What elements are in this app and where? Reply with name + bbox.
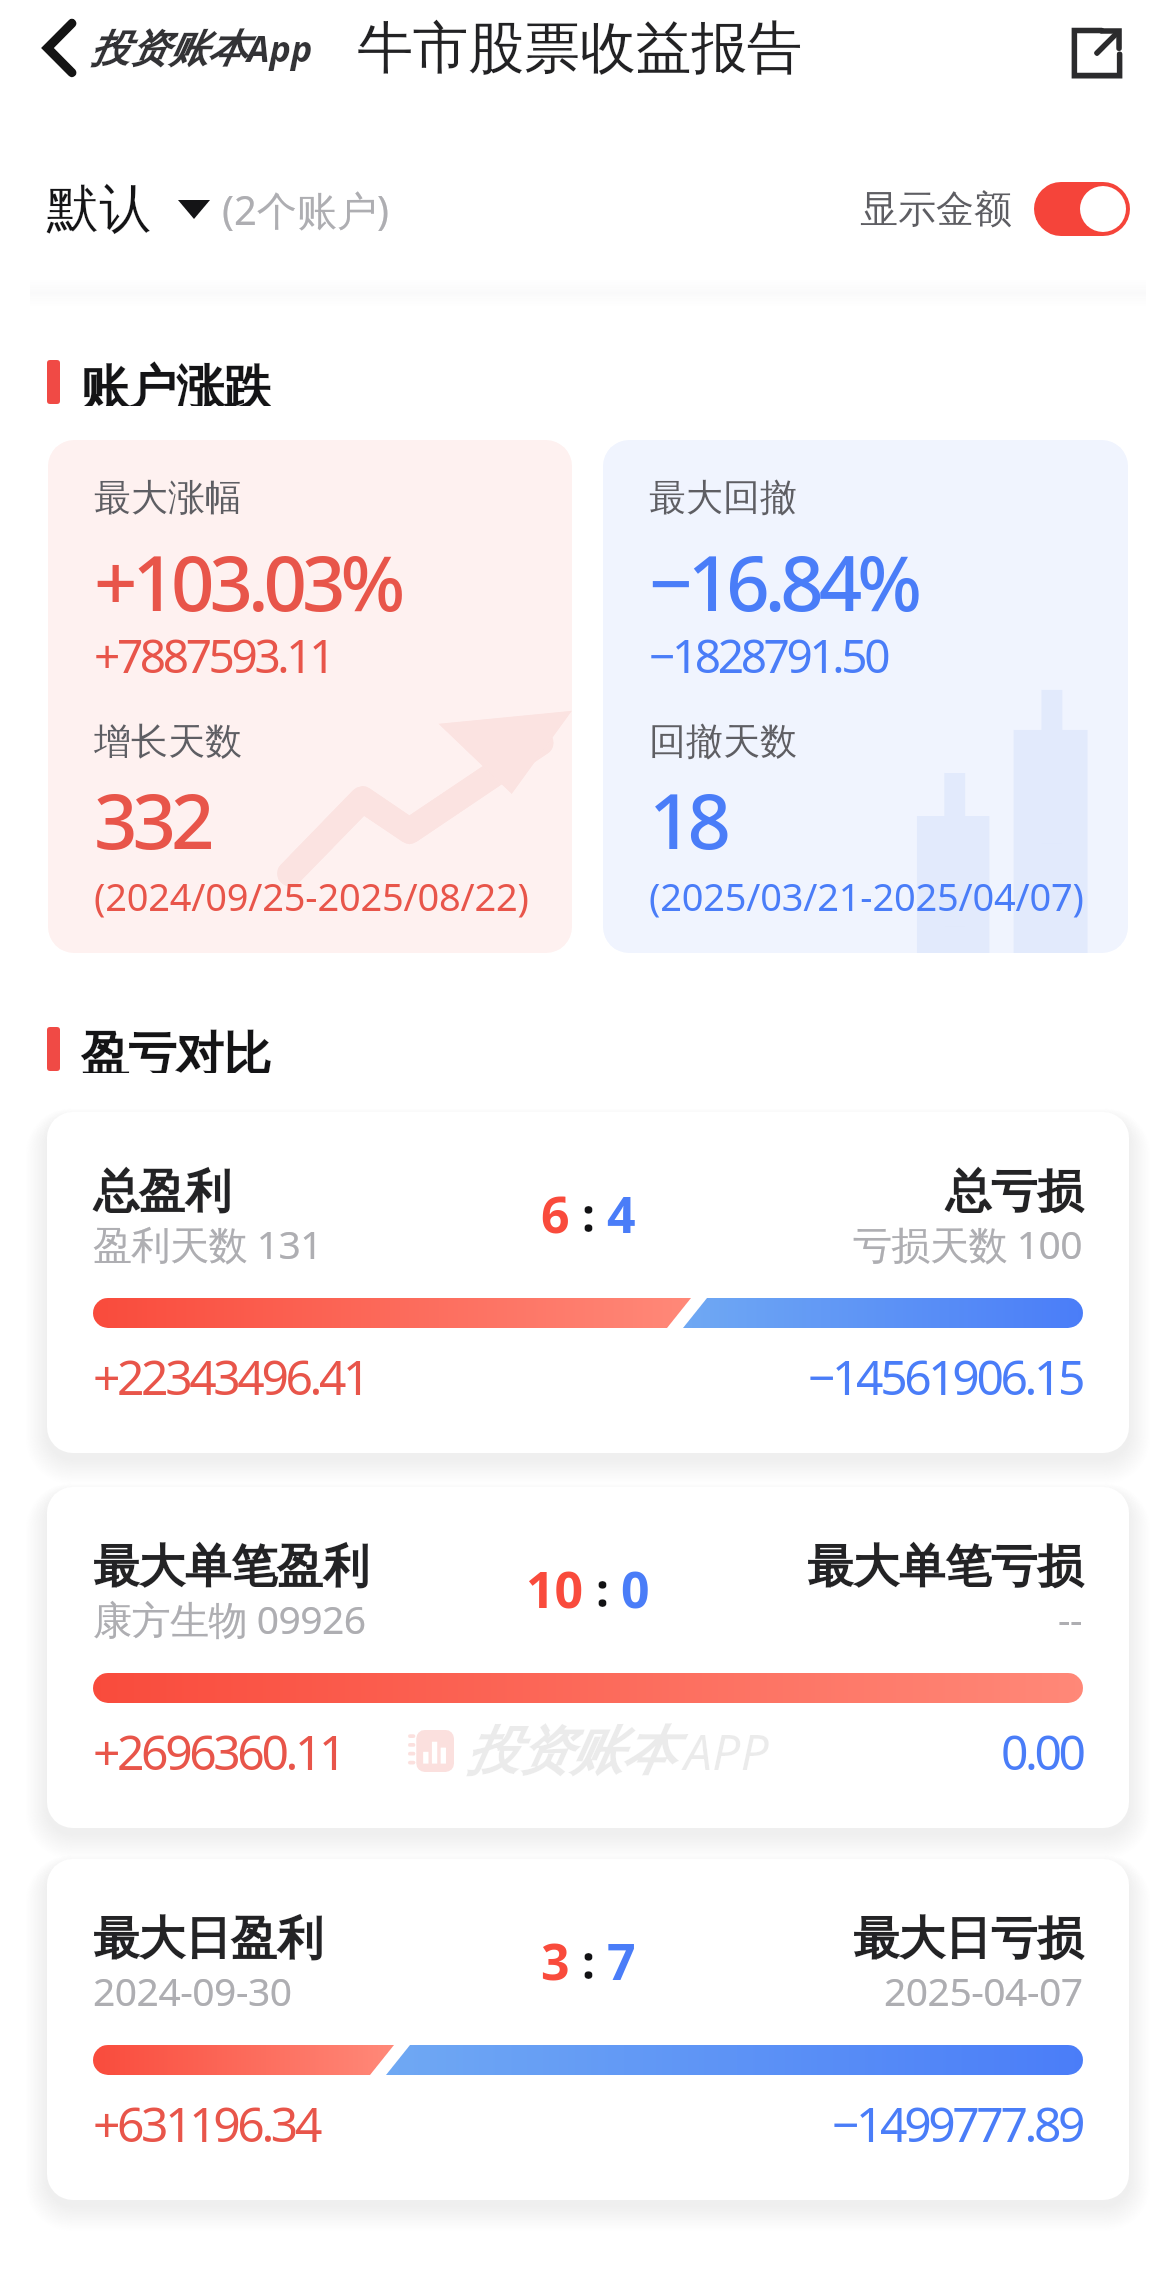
staticText: 康方生物 09926: [93, 1592, 366, 1645]
staticText: 6: [541, 1180, 570, 1248]
staticText: 最大日亏损: [853, 1910, 1083, 1968]
button[interactable]: 选择账户 默认: [40, 170, 395, 248]
staticText: 默认: [46, 176, 152, 242]
staticText: (2个账户): [222, 182, 389, 237]
button[interactable]: 总盈利: [47, 1112, 1129, 1453]
staticText: :: [584, 1558, 621, 1621]
button[interactable]: 最大涨幅: [48, 440, 572, 953]
staticText: 最大单笔亏损: [807, 1538, 1083, 1596]
staticText: −14561906.15: [808, 1344, 1083, 1409]
staticText: 盈亏对比: [81, 1025, 271, 1073]
staticText: −1828791.50: [649, 624, 888, 687]
staticText: +2696360.11: [93, 1719, 344, 1784]
staticText: 总亏损: [945, 1163, 1083, 1221]
staticText: 332: [94, 768, 210, 872]
staticText: 最大回撤: [649, 474, 797, 521]
staticText: 2024-09-30: [93, 1964, 292, 2017]
staticText: 0.00: [1001, 1719, 1083, 1784]
staticText: 增长天数: [94, 718, 242, 765]
staticText: :: [570, 1930, 607, 1993]
button[interactable]: 返回 投资账本App: [0, 12, 319, 84]
staticText: 4: [607, 1180, 636, 1248]
staticText: −16.84%: [649, 530, 918, 634]
button[interactable]: 最大日盈利: [47, 1859, 1129, 2200]
staticText: +7887593.11: [94, 624, 333, 687]
staticText: −1499777.89: [832, 2091, 1083, 2156]
staticText: 10: [526, 1555, 584, 1623]
staticText: :: [570, 1183, 607, 1246]
staticText: 账户涨跌: [81, 358, 271, 406]
staticText: 7: [607, 1927, 636, 1995]
staticText: --: [1058, 1592, 1083, 1645]
staticText: +103.03%: [94, 530, 401, 634]
staticText: 亏损天数 100: [853, 1217, 1083, 1270]
staticText: 最大涨幅: [94, 474, 242, 521]
staticText: 18: [649, 768, 726, 872]
staticText: 回撤天数: [649, 718, 797, 765]
staticText: 总盈利: [93, 1163, 231, 1221]
staticText: 最大日盈利: [93, 1910, 323, 1968]
staticText: (2025/03/21-2025/04/07): [649, 870, 1084, 922]
staticText: 牛市股票收益报告: [357, 13, 803, 84]
staticText: 显示金额: [860, 185, 1012, 233]
staticText: App: [247, 24, 313, 73]
staticText: 2025-04-07: [884, 1964, 1083, 2017]
staticText: APP: [684, 1717, 769, 1785]
button[interactable]: Share: [1042, 5, 1152, 101]
staticText: (2024/09/25-2025/08/22): [94, 870, 529, 922]
staticText: +22343496.41: [93, 1344, 368, 1409]
button[interactable]: 最大回撤: [603, 440, 1128, 953]
staticText: 盈利天数 131: [93, 1217, 323, 1270]
staticText: 投资账本: [466, 1718, 674, 1785]
staticText: 0: [621, 1555, 650, 1623]
staticText: 最大单笔盈利: [93, 1538, 369, 1596]
staticText: +631196.34: [93, 2091, 319, 2156]
button[interactable]: 投资账本: [47, 1487, 1129, 1828]
staticText: 投资账本: [90, 24, 247, 73]
staticText: 3: [541, 1927, 570, 1995]
button[interactable]: 显示金额 开关: [854, 176, 1136, 242]
